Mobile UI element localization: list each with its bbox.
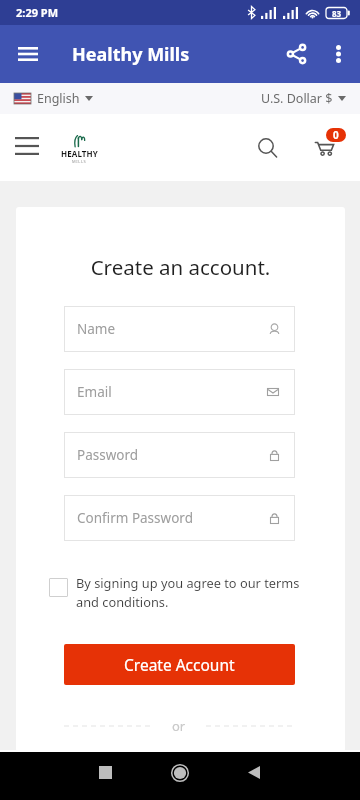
button[interactable]: Name [64, 306, 295, 352]
staticText: Confirm Password [77, 509, 193, 527]
staticText: or [172, 717, 186, 735]
staticText: HEALTHY [61, 148, 98, 159]
staticText: Password [77, 446, 139, 464]
button[interactable]: Menu [7, 126, 47, 166]
staticText: U.S. Dollar $ [261, 90, 333, 107]
button[interactable]: U.S. Dollar $ [261, 90, 346, 107]
staticText: By signing up you agree to our terms and… [76, 574, 309, 611]
staticText: 2:29 PM [16, 5, 59, 20]
button[interactable]: Email [64, 369, 295, 415]
button[interactable]: Password [64, 432, 295, 478]
button[interactable]: More options [318, 34, 358, 74]
staticText: Healthy Mills [72, 42, 190, 67]
staticText: MILLS [72, 159, 87, 164]
button[interactable]: English [14, 90, 93, 107]
staticText: Email [77, 383, 112, 401]
button[interactable]: By signing up you agree to our terms and… [49, 574, 309, 611]
button[interactable]: Healthy Mills home [59, 135, 99, 164]
button[interactable]: Share [274, 32, 318, 76]
staticText: Create Account [124, 654, 235, 675]
staticText: Name [77, 320, 116, 338]
button[interactable]: Cart, 0 items [306, 128, 346, 168]
button[interactable]: Create Account [64, 644, 295, 685]
staticText: Create an account. [16, 253, 345, 281]
button[interactable]: Confirm Password [64, 495, 295, 541]
button[interactable]: Open navigation menu [10, 36, 46, 72]
button[interactable]: Back [235, 754, 272, 791]
staticText: 0 [333, 128, 339, 142]
button[interactable]: Home [161, 754, 198, 791]
button[interactable]: Search [250, 130, 286, 166]
button[interactable]: Recent apps [87, 754, 124, 791]
staticText: English [37, 90, 80, 107]
staticText: 83 [332, 8, 342, 19]
